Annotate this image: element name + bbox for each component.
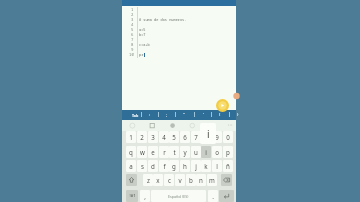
- button[interactable]: .: [208, 190, 218, 202]
- staticText: b=7: [139, 32, 146, 37]
- button[interactable]: 5: [169, 131, 179, 143]
- button[interactable]: 6: [180, 131, 190, 143]
- staticText: i: [207, 127, 210, 141]
- staticText: q: [129, 148, 133, 156]
- button[interactable]: d: [148, 160, 158, 172]
- button[interactable]: 1: [126, 131, 136, 143]
- button[interactable]: m: [207, 174, 217, 186]
- staticText: c=a+b: [139, 42, 150, 47]
- staticText: 8: [204, 133, 208, 141]
- button[interactable]: a: [126, 160, 136, 172]
- button[interactable]: 4: [159, 131, 169, 143]
- button[interactable]: ,: [140, 190, 150, 202]
- button[interactable]: 3: [148, 131, 158, 143]
- button[interactable]: j: [191, 160, 201, 172]
- button[interactable]: (: [212, 110, 228, 120]
- button[interactable]: 0: [223, 131, 233, 143]
- button[interactable]: c: [164, 174, 174, 186]
- staticText: 5: [172, 133, 176, 141]
- button[interactable]: Enter: [219, 190, 234, 202]
- staticText: j: [195, 162, 197, 170]
- staticText: 3: [131, 17, 134, 22]
- staticText: :: [149, 112, 151, 118]
- button[interactable]: ñ: [223, 160, 233, 172]
- button[interactable]: ;: [159, 110, 175, 120]
- staticText: o: [215, 148, 219, 156]
- staticText: a: [129, 162, 133, 170]
- button[interactable]: :: [142, 110, 158, 120]
- staticText: ': [203, 112, 204, 118]
- staticText: z: [147, 176, 150, 184]
- staticText: a=5: [139, 27, 146, 32]
- staticText: 0: [226, 133, 230, 141]
- button[interactable]: r: [159, 146, 169, 158]
- button[interactable]: Backspace: [221, 174, 232, 186]
- staticText: 4: [162, 133, 166, 141]
- button[interactable]: u: [191, 146, 201, 158]
- staticText: pr: [139, 52, 144, 57]
- button[interactable]: !#1: [126, 190, 138, 202]
- button[interactable]: t: [169, 146, 179, 158]
- staticText: 3: [151, 133, 155, 141]
- staticText: b: [189, 176, 193, 184]
- staticText: g: [172, 162, 176, 170]
- staticText: ,: [144, 192, 146, 200]
- staticText: 8: [131, 42, 134, 47]
- staticText: n: [199, 176, 203, 184]
- button[interactable]: z: [143, 174, 153, 186]
- staticText: 5: [131, 27, 134, 32]
- staticText: h: [183, 162, 187, 170]
- button[interactable]: w: [137, 146, 147, 158]
- staticText: u: [194, 148, 198, 156]
- staticText: Español (ES): [168, 194, 189, 199]
- staticText: v: [178, 176, 182, 184]
- staticText: 2: [140, 133, 144, 141]
- staticText: t: [173, 148, 176, 156]
- button[interactable]: 2: [137, 131, 147, 143]
- button[interactable]: i: [201, 146, 211, 158]
- button[interactable]: ": [176, 110, 192, 120]
- button[interactable]: h: [180, 160, 190, 172]
- staticText: ;: [166, 112, 168, 118]
- staticText: l: [216, 162, 218, 170]
- button[interactable]: v: [175, 174, 185, 186]
- button[interactable]: n: [196, 174, 206, 186]
- staticText: r: [163, 148, 166, 156]
- staticText: x: [156, 176, 160, 184]
- button[interactable]: k: [201, 160, 211, 172]
- button[interactable]: 7: [191, 131, 201, 143]
- staticText: 10: [129, 52, 134, 57]
- button[interactable]: Run: [216, 99, 229, 112]
- staticText: !#1: [129, 193, 136, 199]
- button[interactable]: e: [148, 146, 158, 158]
- button[interactable]: y: [180, 146, 190, 158]
- button[interactable]: Tab: [128, 110, 142, 120]
- staticText: 1: [131, 7, 134, 12]
- button[interactable]: g: [169, 160, 179, 172]
- button[interactable]: 8: [201, 131, 211, 143]
- button[interactable]: 9: [212, 131, 222, 143]
- button[interactable]: ): [230, 110, 246, 120]
- staticText: 9: [131, 47, 134, 52]
- staticText: e: [151, 148, 155, 156]
- button[interactable]: b: [186, 174, 196, 186]
- button[interactable]: Shift: [126, 174, 137, 186]
- staticText: 2: [131, 12, 134, 17]
- button[interactable]: ': [195, 110, 211, 120]
- staticText: ": [183, 112, 185, 118]
- staticText: p: [226, 148, 230, 156]
- button[interactable]: s: [137, 160, 147, 172]
- button[interactable]: Español (ES): [151, 190, 206, 202]
- staticText: d: [151, 162, 155, 170]
- button[interactable]: p: [223, 146, 233, 158]
- staticText: c: [168, 176, 171, 184]
- button[interactable]: o: [212, 146, 222, 158]
- button[interactable]: q: [126, 146, 136, 158]
- staticText: 6: [131, 32, 134, 37]
- button[interactable]: x: [153, 174, 163, 186]
- button[interactable]: f: [159, 160, 169, 172]
- staticText: ): [237, 112, 239, 118]
- staticText: 7: [131, 37, 134, 42]
- button[interactable]: l: [212, 160, 222, 172]
